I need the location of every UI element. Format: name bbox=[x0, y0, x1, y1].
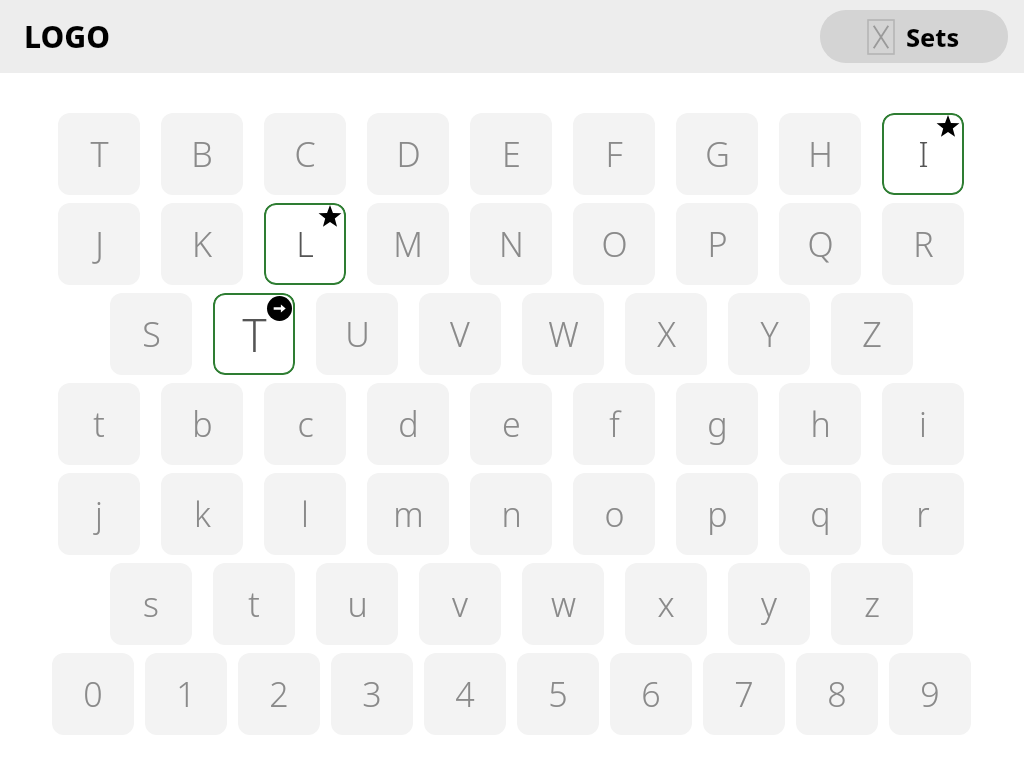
staticText: I bbox=[918, 131, 929, 177]
button[interactable]: O bbox=[573, 203, 655, 285]
staticText: 7 bbox=[734, 671, 754, 717]
button[interactable]: U bbox=[316, 293, 398, 375]
button[interactable]: C bbox=[264, 113, 346, 195]
other: Close sets bbox=[868, 20, 894, 54]
staticText: n bbox=[501, 491, 522, 537]
staticText: t bbox=[93, 401, 105, 447]
button[interactable]: P bbox=[676, 203, 758, 285]
staticText: Sets bbox=[906, 20, 960, 54]
button[interactable]: l bbox=[264, 473, 346, 555]
button[interactable]: y bbox=[728, 563, 810, 645]
button[interactable]: 4 bbox=[424, 653, 506, 735]
button[interactable]: i bbox=[882, 383, 964, 465]
button[interactable]: 2 bbox=[238, 653, 320, 735]
button[interactable]: h bbox=[779, 383, 861, 465]
button[interactable]: 6 bbox=[610, 653, 692, 735]
button[interactable]: Q bbox=[779, 203, 861, 285]
button[interactable]: H bbox=[779, 113, 861, 195]
staticText: h bbox=[810, 401, 831, 447]
button[interactable]: j bbox=[58, 473, 140, 555]
button[interactable]: s bbox=[110, 563, 192, 645]
button[interactable]: u bbox=[316, 563, 398, 645]
staticText: LOGO bbox=[24, 16, 111, 57]
button[interactable]: z bbox=[831, 563, 913, 645]
button[interactable]: V bbox=[419, 293, 501, 375]
button[interactable]: w bbox=[522, 563, 604, 645]
staticText: j bbox=[95, 491, 103, 537]
staticText: d bbox=[398, 401, 419, 447]
staticText: Z bbox=[862, 311, 882, 357]
staticText: J bbox=[95, 221, 104, 267]
staticText: x bbox=[657, 581, 675, 627]
staticText: O bbox=[601, 221, 628, 267]
button[interactable]: t bbox=[213, 563, 295, 645]
button[interactable]: W bbox=[522, 293, 604, 375]
button[interactable]: r bbox=[882, 473, 964, 555]
button[interactable]: T bbox=[213, 293, 295, 375]
staticText: 6 bbox=[641, 671, 661, 717]
button[interactable]: L bbox=[264, 203, 346, 285]
button[interactable]: 5 bbox=[517, 653, 599, 735]
button[interactable]: g bbox=[676, 383, 758, 465]
staticText: K bbox=[192, 221, 212, 267]
staticText: D bbox=[396, 131, 421, 177]
button[interactable]: m bbox=[367, 473, 449, 555]
staticText: w bbox=[551, 581, 576, 627]
button[interactable]: c bbox=[264, 383, 346, 465]
staticText: v bbox=[452, 581, 468, 627]
button[interactable]: o bbox=[573, 473, 655, 555]
button[interactable]: x bbox=[625, 563, 707, 645]
staticText: s bbox=[143, 581, 159, 627]
button[interactable]: 7 bbox=[703, 653, 785, 735]
button[interactable]: k bbox=[161, 473, 243, 555]
button[interactable]: Z bbox=[831, 293, 913, 375]
staticText: U bbox=[345, 311, 370, 357]
button[interactable]: K bbox=[161, 203, 243, 285]
button[interactable]: b bbox=[161, 383, 243, 465]
staticText: G bbox=[705, 131, 730, 177]
button[interactable]: d bbox=[367, 383, 449, 465]
button[interactable]: 0 bbox=[52, 653, 134, 735]
button[interactable]: 1 bbox=[145, 653, 227, 735]
button[interactable]: t bbox=[58, 383, 140, 465]
button[interactable]: E bbox=[470, 113, 552, 195]
button[interactable]: F bbox=[573, 113, 655, 195]
staticText: 2 bbox=[269, 671, 289, 717]
staticText: p bbox=[707, 491, 728, 537]
staticText: t bbox=[248, 581, 260, 627]
button[interactable]: n bbox=[470, 473, 552, 555]
button[interactable]: p bbox=[676, 473, 758, 555]
staticText: 1 bbox=[176, 671, 196, 717]
button[interactable]: R bbox=[882, 203, 964, 285]
button[interactable]: X bbox=[625, 293, 707, 375]
button[interactable]: e bbox=[470, 383, 552, 465]
button[interactable]: D bbox=[367, 113, 449, 195]
staticText: Y bbox=[760, 311, 779, 357]
staticText: R bbox=[913, 221, 934, 267]
staticText: e bbox=[502, 401, 521, 447]
button[interactable]: Y bbox=[728, 293, 810, 375]
staticText: X bbox=[657, 311, 676, 357]
staticText: T bbox=[90, 131, 109, 177]
button[interactable]: f bbox=[573, 383, 655, 465]
staticText: g bbox=[707, 401, 728, 447]
button[interactable]: N bbox=[470, 203, 552, 285]
button[interactable]: T bbox=[58, 113, 140, 195]
button[interactable]: M bbox=[367, 203, 449, 285]
staticText: 0 bbox=[83, 671, 103, 717]
button[interactable]: B bbox=[161, 113, 243, 195]
button[interactable]: v bbox=[419, 563, 501, 645]
button[interactable]: Close sets bbox=[820, 10, 1008, 63]
button[interactable]: I bbox=[882, 113, 964, 195]
staticText: E bbox=[502, 131, 521, 177]
button[interactable]: 3 bbox=[331, 653, 413, 735]
staticText: 5 bbox=[548, 671, 568, 717]
staticText: B bbox=[191, 131, 213, 177]
button[interactable]: 8 bbox=[796, 653, 878, 735]
button[interactable]: q bbox=[779, 473, 861, 555]
button[interactable]: G bbox=[676, 113, 758, 195]
staticText: f bbox=[609, 401, 620, 447]
button[interactable]: J bbox=[58, 203, 140, 285]
button[interactable]: S bbox=[110, 293, 192, 375]
button[interactable]: 9 bbox=[889, 653, 971, 735]
